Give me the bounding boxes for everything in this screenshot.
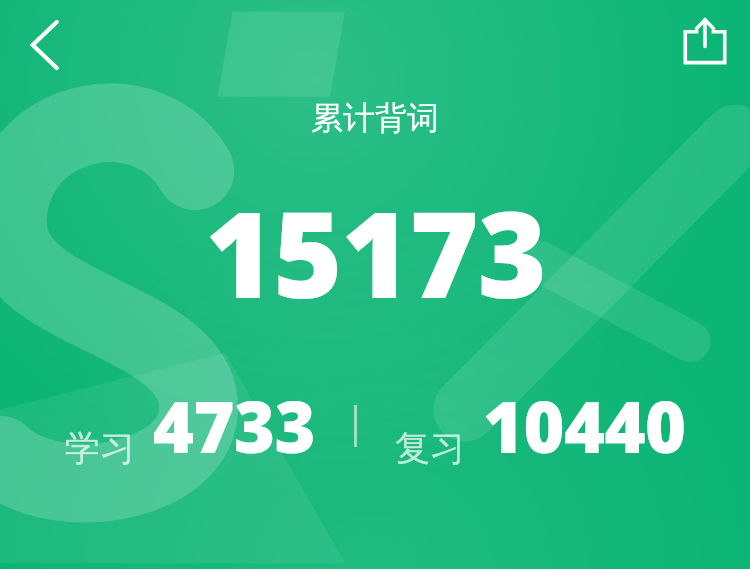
staticText: 复习: [395, 426, 465, 470]
staticText: 4733: [153, 378, 316, 473]
button[interactable]: 复习: [391, 378, 690, 473]
button[interactable]: Share: [674, 10, 736, 72]
staticText: 10440: [483, 378, 686, 473]
staticText: 累计背词: [311, 98, 439, 138]
staticText: 学习: [65, 426, 135, 470]
staticText: 15173: [205, 172, 546, 333]
button[interactable]: Back: [12, 12, 78, 78]
button[interactable]: 学习: [61, 378, 320, 473]
